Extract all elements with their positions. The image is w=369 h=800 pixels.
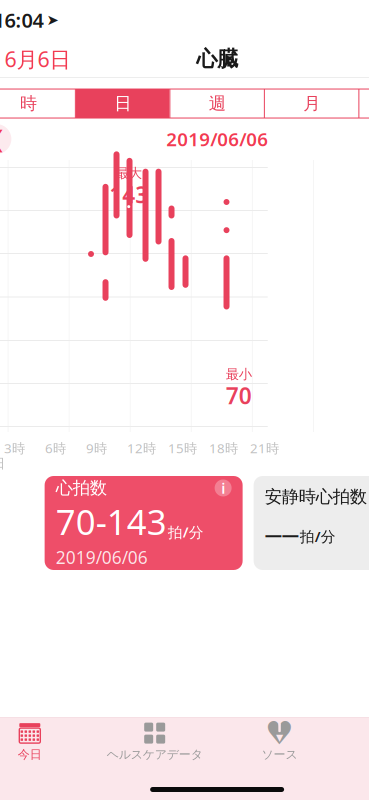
staticText: 70-143 [56,499,167,545]
button[interactable]: 月 [265,89,358,118]
button[interactable]: 週 [170,89,264,118]
staticText: 心拍数 [56,477,107,499]
button[interactable]: 時 [0,89,75,118]
button[interactable]: 今日 [0,717,92,766]
button[interactable]: 前の日 [0,124,11,154]
staticText: 時 [20,93,37,114]
staticText: 18時 [209,439,238,457]
staticText: 12時 [127,439,156,457]
staticText: ソース [262,747,298,762]
staticText: i [221,478,225,498]
button[interactable]: ヘルスケアデータ [92,717,217,766]
staticText: 月 [303,93,320,114]
staticText: 最大 [116,165,142,181]
staticText: ❮ [0,126,6,152]
staticText: 6月6日 [4,45,70,73]
staticText: 15時 [168,439,197,457]
staticText: ♥ [265,715,294,751]
staticText: 拍/分 [300,526,336,546]
staticText: ➤ [46,12,58,28]
staticText: 3時 [4,439,25,457]
button[interactable]: ❮ [0,39,78,79]
button[interactable]: 安静時心拍数 [254,476,369,570]
staticText: 2019/06/06 [166,127,268,151]
button[interactable]: 日 [76,89,169,118]
staticText: 週 [209,93,226,114]
staticText: 心臓 [196,46,238,72]
staticText: 2019/06/06 [56,546,148,569]
staticText: ―― [265,523,299,546]
staticText: 最小 [226,366,252,382]
staticText: 日 [114,93,131,114]
staticText: 6月6日 [0,454,5,472]
staticText: 9時 [86,439,107,457]
staticText: ▼ [276,732,283,743]
staticText: ヘルスケアデータ [107,747,203,762]
staticText: 安静時心拍数 [265,486,367,507]
button[interactable]: 年 [359,89,369,118]
button[interactable]: ♥ [217,717,342,766]
staticText: 70 [226,380,252,410]
staticText: 143 [109,179,148,209]
staticText: 21時 [250,439,279,457]
staticText: 6時 [45,439,66,457]
staticText: 16:04 [0,7,43,33]
button[interactable]: 心拍数 [45,476,243,570]
staticText: 拍/分 [168,522,204,542]
staticText: 今日 [18,747,42,762]
